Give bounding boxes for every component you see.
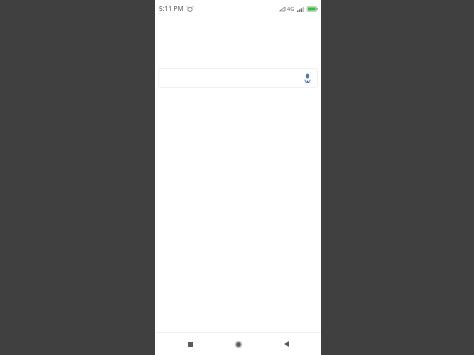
button[interactable]: Recent apps [166,333,214,355]
staticText: 4G [287,5,295,12]
button[interactable]: Back [262,333,310,355]
button[interactable]: Home [214,333,262,355]
staticText: 5:11 PM [159,4,184,13]
button[interactable]: Voice search [158,68,318,88]
button[interactable]: Voice search [301,72,313,84]
